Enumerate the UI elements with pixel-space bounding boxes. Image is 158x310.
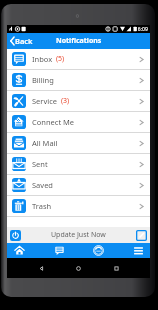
staticText: Back xyxy=(15,36,33,46)
staticText: Sent xyxy=(32,159,48,169)
button[interactable]: Account xyxy=(86,243,110,258)
button[interactable]: Sent xyxy=(7,154,150,175)
button[interactable]: Messages xyxy=(47,243,71,258)
staticText: Update Just Now xyxy=(51,230,106,240)
staticText: (3) xyxy=(61,96,70,106)
button[interactable]: Menu xyxy=(126,243,150,258)
staticText: All Mail xyxy=(32,138,58,148)
button[interactable]: Trash xyxy=(7,196,150,217)
staticText: Trash xyxy=(32,201,52,211)
staticText: Inbox xyxy=(32,54,53,64)
button[interactable]: Compose xyxy=(136,230,147,241)
button[interactable]: Service xyxy=(7,91,150,112)
button[interactable]: Saved xyxy=(7,175,150,196)
button[interactable]: Billing xyxy=(7,70,150,91)
staticText: Service xyxy=(32,96,58,106)
button[interactable]: All Mail xyxy=(7,133,150,154)
button[interactable]: Refresh xyxy=(10,230,21,241)
button[interactable]: Connect Me xyxy=(7,112,150,133)
staticText: Billing xyxy=(32,75,54,85)
staticText: Notifications xyxy=(56,36,102,46)
button[interactable]: Inbox xyxy=(7,49,150,70)
button[interactable]: Back xyxy=(7,35,37,47)
staticText: (5) xyxy=(56,54,65,64)
staticText: Saved xyxy=(32,180,53,190)
button[interactable]: Home xyxy=(7,243,31,258)
staticText: 16:09 xyxy=(135,26,148,33)
staticText: Connect Me xyxy=(32,117,75,127)
